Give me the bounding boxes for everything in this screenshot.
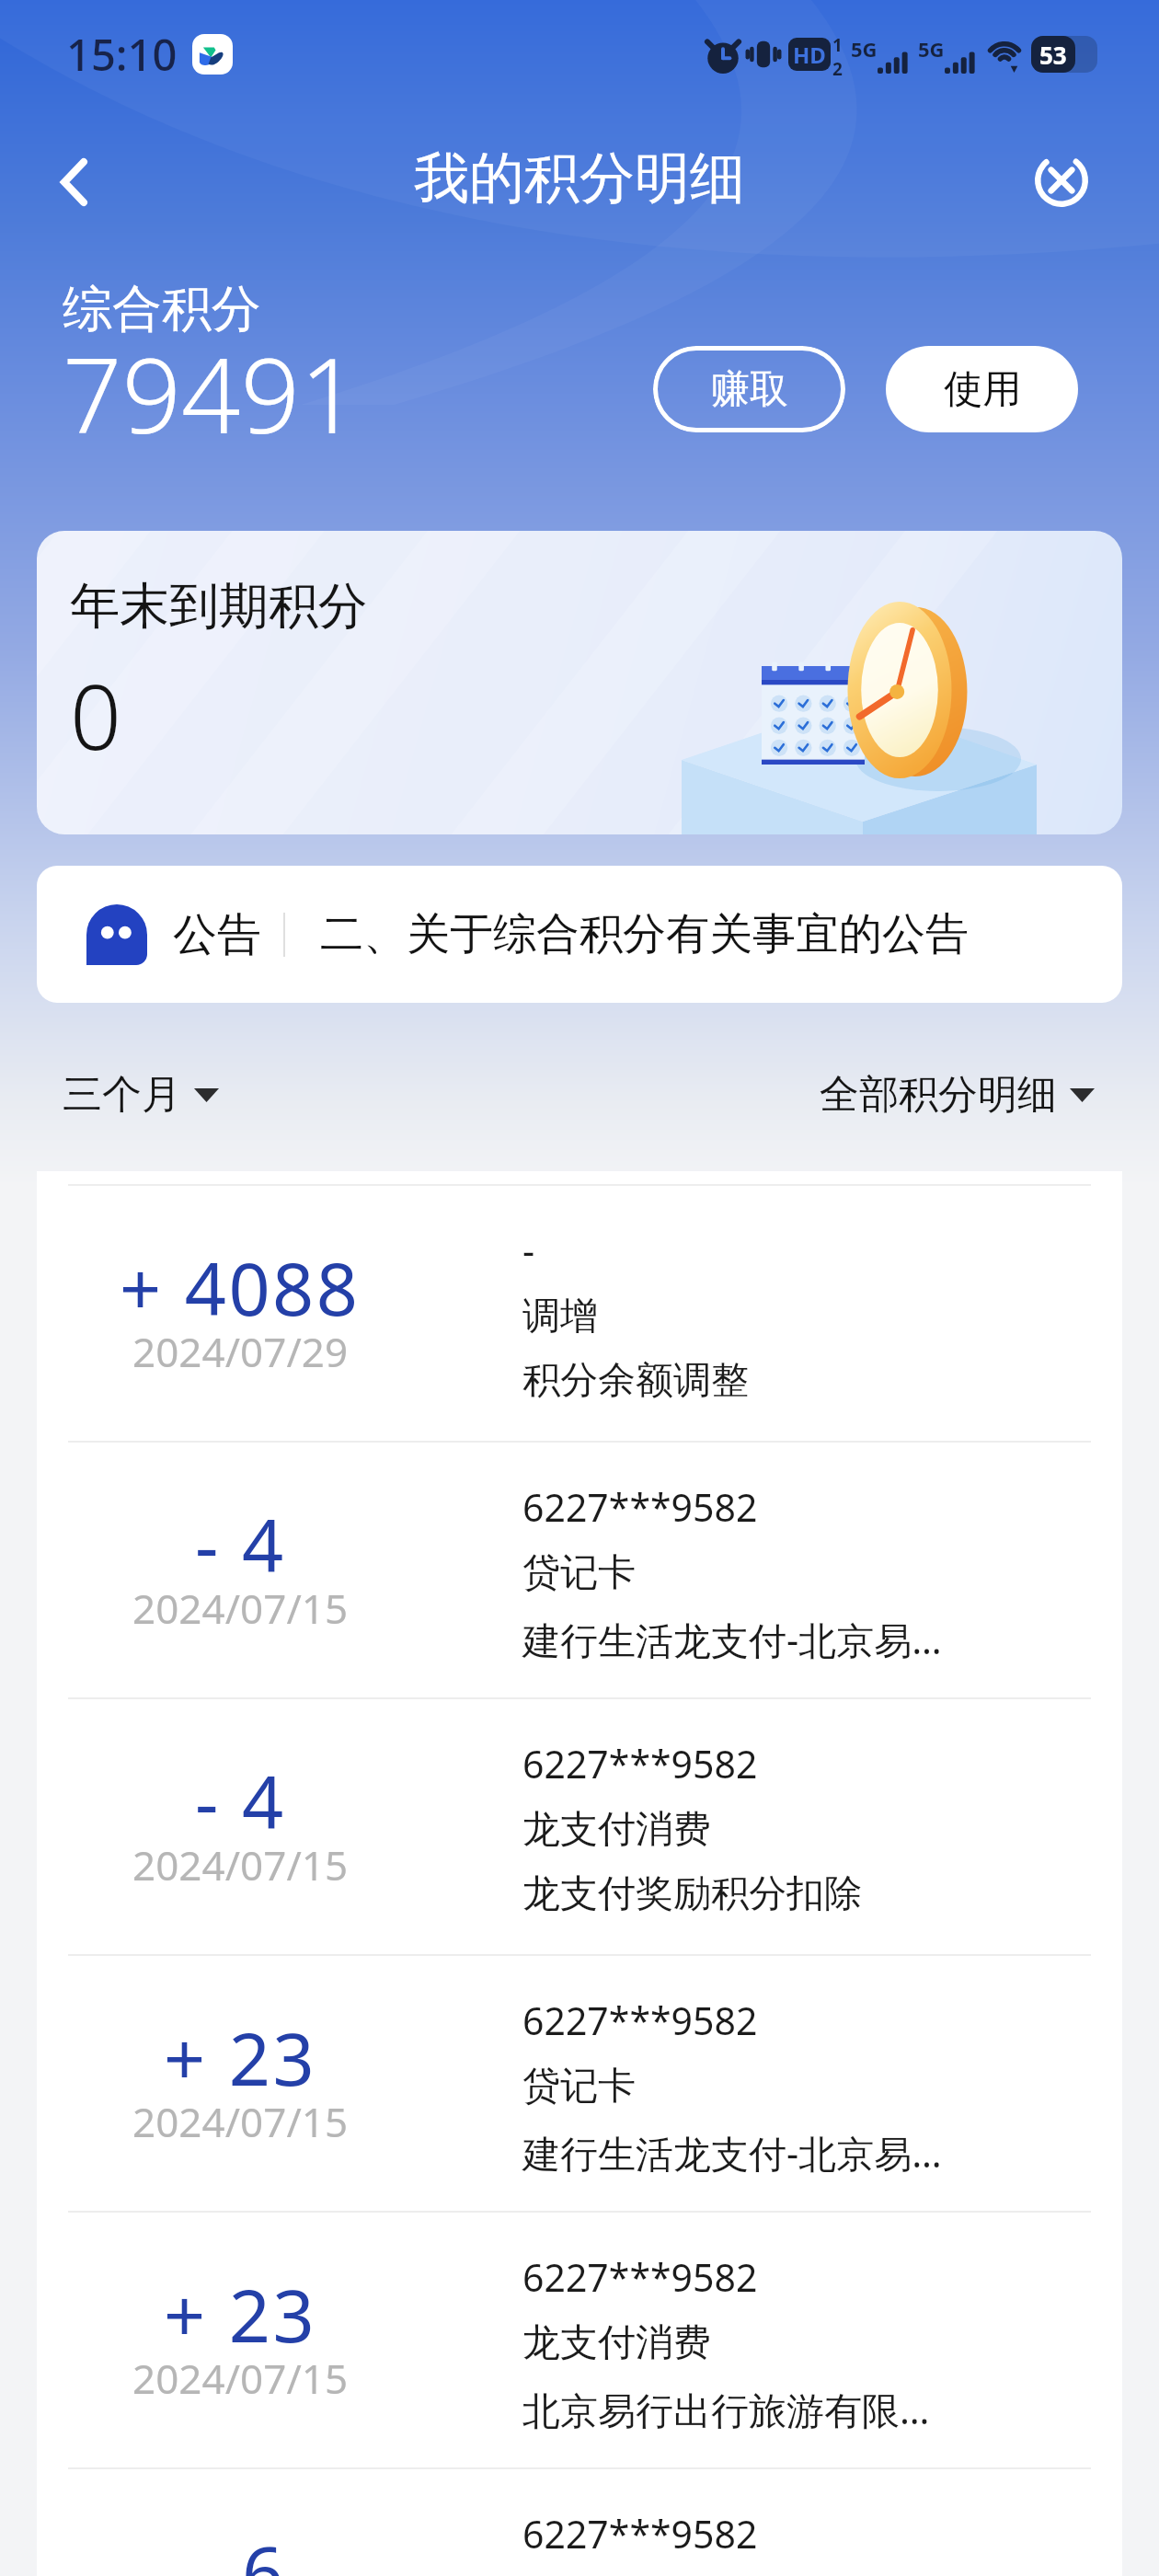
staticText: 积分余额调整 (522, 1357, 749, 1405)
button[interactable]: - 4 (37, 1443, 1122, 1697)
staticText: 年末到期积分 (70, 575, 368, 638)
staticText: - 4 (195, 1752, 286, 1851)
staticText: 79491 (63, 322, 360, 464)
staticText: 5G (851, 35, 878, 63)
button[interactable]: - 4 (37, 1699, 1122, 1954)
staticText: 二、关于综合积分有关事宜的公告 (320, 907, 969, 961)
staticText: - (522, 1225, 535, 1276)
staticText: 使用 (944, 365, 1021, 414)
staticText: 1 (832, 33, 843, 57)
staticText: 建行生活龙支付-北京易… (522, 1614, 942, 1665)
staticText: 0 (70, 653, 121, 776)
staticText: 6227***9582 (522, 1738, 758, 1789)
button[interactable]: + 23 (37, 1956, 1122, 2211)
staticText: 龙支付奖励积分扣除 (522, 1870, 862, 1918)
button[interactable]: 全部积分明细 (820, 1070, 1095, 1120)
staticText: 6227***9582 (522, 2251, 758, 2303)
button[interactable]: 三个月 (63, 1070, 219, 1120)
staticText: 6227***9582 (522, 2508, 758, 2559)
staticText: 龙支付消费 (522, 1806, 711, 1854)
staticText: 2 (832, 57, 843, 75)
staticText: 2024/07/29 (132, 1324, 349, 1379)
staticText: 2024/07/15 (132, 1581, 349, 1636)
button[interactable]: 使用 (886, 346, 1078, 432)
staticText: + 4088 (120, 1238, 361, 1338)
button[interactable]: + 23 (37, 2213, 1122, 2467)
staticText: 龙支付消费 (522, 2319, 711, 2367)
staticText: 贷记卡 (522, 2063, 636, 2110)
staticText: 综合积分 (63, 278, 261, 340)
staticText: 15:10 (66, 25, 178, 84)
staticText: 6227***9582 (522, 1995, 758, 2046)
staticText: 调增 (522, 1293, 598, 1340)
staticText: 6227***9582 (522, 1481, 758, 1533)
button[interactable]: 赚取 (653, 346, 845, 432)
staticText: 公告 (173, 907, 261, 962)
button[interactable]: + 4088 (37, 1186, 1122, 1441)
staticText: + 23 (164, 2008, 317, 2108)
staticText: 贷记卡 (522, 1549, 636, 1597)
staticText: 2024/07/15 (132, 2094, 349, 2149)
staticText: HD (793, 40, 826, 70)
button[interactable]: Back (23, 132, 124, 233)
button[interactable]: - 6 (37, 2469, 1122, 2576)
staticText: 建行生活龙支付-北京易… (522, 2127, 942, 2179)
staticText: 北京易行出行旅游有限… (522, 2384, 930, 2435)
staticText: 赚取 (711, 365, 788, 414)
staticText: 我的积分明细 (414, 144, 745, 213)
staticText: 53 (1039, 39, 1067, 71)
button[interactable]: 年末到期积分 (37, 531, 1122, 834)
staticText: 2024/07/15 (132, 2351, 349, 2406)
staticText: 三个月 (63, 1070, 181, 1120)
staticText: 2024/07/15 (132, 1837, 349, 1892)
button[interactable]: Close (1016, 134, 1107, 226)
staticText: + 23 (164, 2265, 317, 2364)
staticText: 全部积分明细 (820, 1070, 1057, 1120)
staticText: - 4 (195, 1495, 286, 1594)
staticText: - 6 (195, 2522, 286, 2576)
button[interactable]: 公告 (37, 866, 1122, 1003)
staticText: 5G (918, 35, 945, 63)
